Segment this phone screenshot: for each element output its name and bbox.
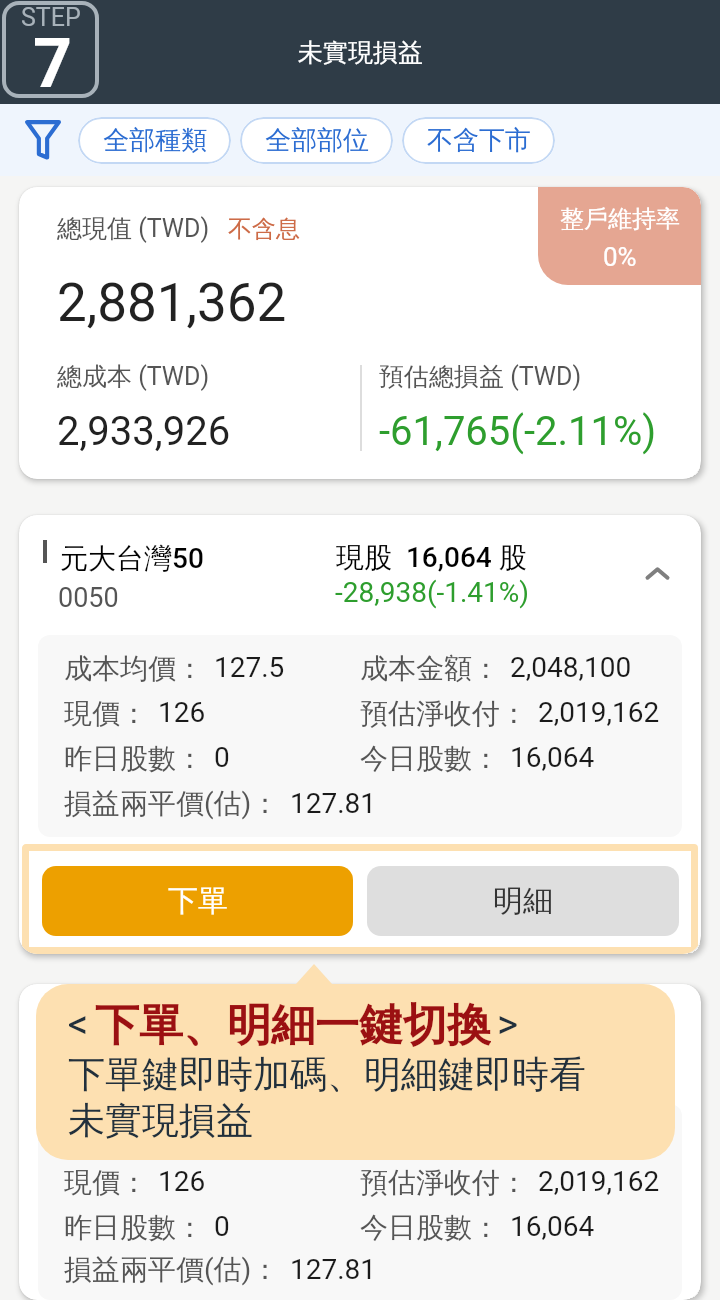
staticText: -61,765(-2.11%): [379, 408, 657, 455]
staticText: 不含息: [228, 214, 300, 244]
button[interactable]: Filter: [25, 120, 61, 160]
staticText: 預估淨收付：: [360, 696, 528, 731]
staticText: 現股 16,064 股: [336, 1009, 527, 1044]
staticText: 預估淨收付：: [360, 1165, 528, 1200]
staticText: 0%: [603, 242, 637, 272]
staticText: <: [68, 1001, 89, 1048]
staticText: 2,881,362: [57, 272, 287, 334]
staticText: 成本均價：: [64, 1120, 204, 1155]
staticText: 現股 16,064 股: [336, 540, 527, 575]
staticText: 127.5: [214, 651, 285, 684]
button[interactable]: 不含下市: [402, 117, 555, 164]
staticText: 現價：: [64, 696, 148, 731]
staticText: 16,064: [510, 741, 595, 774]
button[interactable]: 明細: [367, 866, 679, 936]
staticText: 元大台灣50: [60, 541, 204, 576]
staticText: 未實現損益: [68, 1097, 253, 1143]
staticText: 126: [158, 1165, 206, 1198]
staticText: 2,019,162: [538, 1165, 660, 1198]
staticText: 昨日股數：: [64, 1210, 204, 1245]
staticText: 7: [33, 24, 73, 104]
staticText: -28,938(-1.41%): [335, 576, 530, 609]
staticText: 成本均價：: [64, 651, 204, 686]
staticText: 127.81: [290, 1253, 377, 1286]
staticText: >: [497, 1001, 518, 1048]
staticText: 16,064: [510, 1210, 595, 1243]
staticText: 整戶維持率: [560, 204, 680, 234]
staticText: 全部部位: [265, 124, 369, 157]
button[interactable]: 全部種類: [78, 117, 231, 164]
staticText: 元大台灣50: [60, 1010, 204, 1045]
staticText: 總成本 (TWD): [57, 361, 210, 392]
button[interactable]: Collapse: [645, 564, 670, 583]
staticText: 總現值 (TWD): [57, 213, 210, 244]
staticText: 下單: [168, 882, 228, 920]
staticText: 2,019,162: [538, 696, 660, 729]
staticText: STEP: [21, 3, 81, 32]
staticText: 現價：: [64, 1165, 148, 1200]
button[interactable]: 全部部位: [240, 117, 393, 164]
staticText: 0: [214, 741, 230, 774]
staticText: 2,933,926: [57, 408, 231, 455]
staticText: 126: [158, 696, 206, 729]
staticText: 損益兩平價(估)：: [64, 786, 280, 821]
staticText: 下單、明細一鍵切換: [95, 998, 491, 1051]
staticText: 未實現損益: [298, 37, 423, 68]
staticText: 明細: [493, 882, 553, 920]
staticText: 不含下市: [427, 124, 531, 157]
staticText: 今日股數：: [360, 741, 500, 776]
staticText: -28,938(-1.41%): [335, 1045, 530, 1078]
button[interactable]: 下單: [42, 866, 353, 936]
staticText: 成本金額：: [360, 651, 500, 686]
staticText: 0: [214, 1210, 230, 1243]
staticText: 127.81: [290, 787, 377, 820]
staticText: 今日股數：: [360, 1210, 500, 1245]
staticText: 0050: [58, 582, 119, 614]
staticText: 昨日股數：: [64, 741, 204, 776]
staticText: 損益兩平價(估)：: [64, 1252, 280, 1287]
staticText: 全部種類: [103, 124, 207, 157]
staticText: 預估總損益 (TWD): [379, 361, 582, 392]
staticText: 0050: [58, 1051, 119, 1083]
staticText: 2,048,100: [510, 651, 632, 684]
staticText: 下單鍵即時加碼、明細鍵即時看: [68, 1051, 586, 1097]
staticText: 127.5: [214, 1120, 285, 1153]
